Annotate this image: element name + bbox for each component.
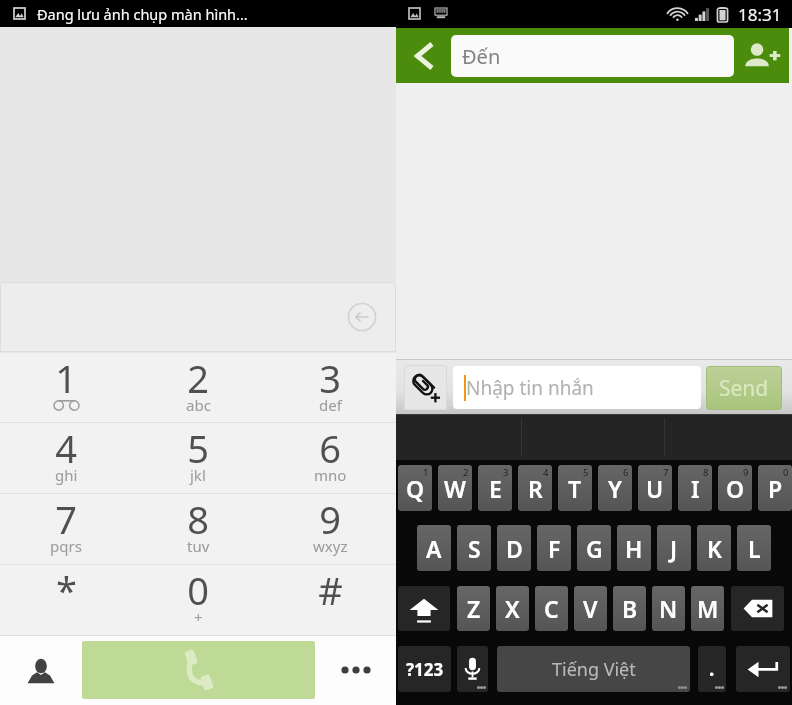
button[interactable]: 8 bbox=[132, 494, 264, 564]
staticText: 8 bbox=[703, 466, 709, 479]
button[interactable]: B bbox=[613, 586, 646, 631]
staticText: 18:31 bbox=[738, 3, 782, 26]
button[interactable]: H bbox=[617, 525, 651, 571]
button[interactable]: L bbox=[737, 525, 771, 571]
staticText: R bbox=[528, 473, 543, 504]
button[interactable]: X bbox=[496, 586, 529, 631]
button[interactable]: C bbox=[535, 586, 568, 631]
button[interactable]: J bbox=[657, 525, 691, 571]
staticText: J bbox=[670, 533, 678, 564]
button[interactable]: Z bbox=[457, 586, 490, 631]
staticText: 1 bbox=[55, 352, 77, 398]
staticText: W bbox=[444, 473, 466, 504]
button[interactable]: K bbox=[697, 525, 731, 571]
staticText: 5 bbox=[187, 422, 209, 468]
button[interactable]: S bbox=[457, 525, 491, 571]
staticText: B bbox=[622, 593, 638, 624]
button[interactable]: E bbox=[478, 465, 512, 511]
button[interactable]: Add contact bbox=[734, 28, 789, 83]
button[interactable]: 6 bbox=[264, 423, 396, 493]
staticText: + bbox=[194, 607, 203, 627]
button[interactable]: 5 bbox=[132, 423, 264, 493]
button[interactable]: Enter bbox=[736, 646, 790, 692]
button[interactable]: More options bbox=[315, 635, 396, 705]
button[interactable]: 3 bbox=[264, 353, 396, 422]
staticText: Nhập tin nhắn bbox=[466, 375, 594, 401]
button[interactable]: W bbox=[438, 465, 472, 511]
button[interactable]: 7 bbox=[0, 494, 132, 564]
button[interactable]: Call bbox=[82, 641, 315, 699]
staticText: . bbox=[709, 656, 715, 682]
staticText: jkl bbox=[190, 465, 206, 485]
button[interactable]: O bbox=[718, 465, 752, 511]
button[interactable]: Attach bbox=[404, 365, 447, 410]
button[interactable]: Đến bbox=[451, 35, 734, 77]
staticText: F bbox=[548, 533, 561, 564]
button[interactable]: 4 bbox=[0, 423, 132, 493]
button[interactable]: Send bbox=[706, 366, 782, 410]
staticText: X bbox=[505, 593, 520, 624]
staticText: tuv bbox=[187, 536, 210, 556]
button[interactable]: Q bbox=[398, 465, 432, 511]
button[interactable]: Back bbox=[396, 28, 451, 83]
button[interactable]: F bbox=[537, 525, 571, 571]
staticText: 6 bbox=[623, 466, 629, 479]
button[interactable]: T bbox=[558, 465, 592, 511]
button[interactable]: I bbox=[678, 465, 712, 511]
staticText: S bbox=[468, 533, 481, 564]
button[interactable]: # bbox=[264, 565, 396, 635]
button[interactable]: Backspace bbox=[346, 301, 378, 333]
staticText: 0 bbox=[783, 466, 789, 479]
staticText: 8 bbox=[187, 493, 209, 539]
staticText: 2 bbox=[187, 352, 209, 398]
staticText: ?123 bbox=[406, 658, 444, 681]
button[interactable]: Contacts bbox=[0, 635, 82, 705]
button[interactable]: 1 bbox=[0, 353, 132, 422]
button[interactable]: G bbox=[577, 525, 611, 571]
staticText: M bbox=[697, 593, 719, 624]
staticText: I bbox=[691, 473, 700, 504]
staticText: mno bbox=[314, 465, 347, 485]
staticText: L bbox=[748, 533, 761, 564]
staticText: V bbox=[583, 593, 598, 624]
staticText: Y bbox=[608, 473, 622, 504]
button[interactable]: 0 bbox=[132, 565, 264, 635]
staticText: 2 bbox=[463, 466, 469, 479]
button[interactable]: R bbox=[518, 465, 552, 511]
button[interactable]: Y bbox=[598, 465, 632, 511]
button[interactable]: Shift bbox=[398, 586, 450, 631]
staticText: 7 bbox=[663, 466, 669, 479]
staticText: A bbox=[426, 533, 442, 564]
button[interactable]: ?123 bbox=[398, 646, 451, 692]
staticText: Đến bbox=[462, 43, 501, 70]
staticText: abc bbox=[186, 395, 211, 415]
staticText: G bbox=[586, 533, 603, 564]
button[interactable]: Tiếng Việt bbox=[497, 646, 690, 692]
button[interactable]: P bbox=[758, 465, 792, 511]
staticText: 4 bbox=[55, 422, 77, 468]
button[interactable]: D bbox=[497, 525, 531, 571]
staticText: 4 bbox=[543, 466, 549, 479]
staticText: C bbox=[544, 593, 559, 624]
staticText: 3 bbox=[503, 466, 509, 479]
staticText: pqrs bbox=[50, 536, 82, 556]
button[interactable]: * bbox=[0, 565, 132, 635]
staticText: 3 bbox=[319, 352, 341, 398]
staticText: H bbox=[625, 533, 643, 564]
button[interactable]: V bbox=[574, 586, 607, 631]
staticText: # bbox=[318, 564, 343, 610]
button[interactable]: M bbox=[691, 586, 724, 631]
staticText: wxyz bbox=[313, 536, 348, 556]
button[interactable]: A bbox=[417, 525, 451, 571]
staticText: 0 bbox=[187, 564, 209, 610]
button[interactable]: Nhập tin nhắn bbox=[453, 366, 701, 409]
button[interactable]: Voice input bbox=[457, 646, 488, 692]
staticText: * bbox=[56, 564, 77, 610]
button[interactable]: U bbox=[638, 465, 672, 511]
button[interactable]: . bbox=[698, 646, 726, 692]
button[interactable]: 9 bbox=[264, 494, 396, 564]
button[interactable]: 2 bbox=[132, 353, 264, 422]
button[interactable]: Backspace bbox=[731, 586, 784, 631]
staticText: 5 bbox=[583, 466, 589, 479]
button[interactable]: N bbox=[652, 586, 685, 631]
